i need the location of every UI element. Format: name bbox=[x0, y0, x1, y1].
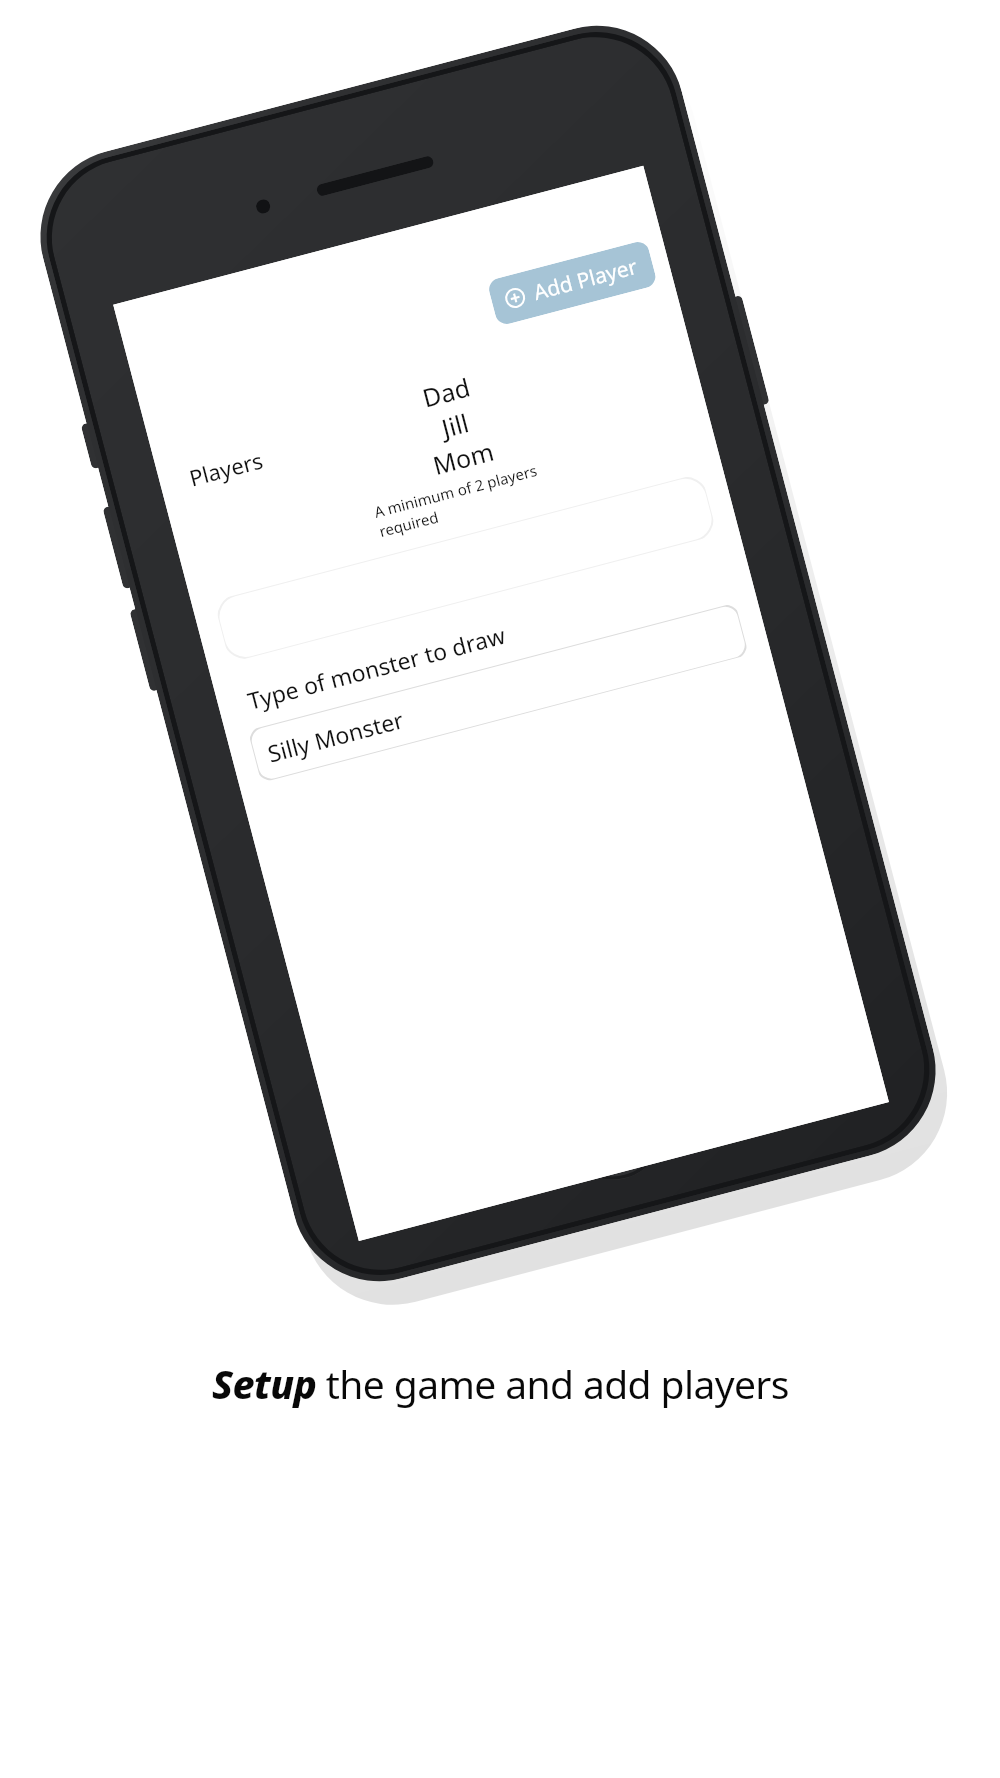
button[interactable]: Add bbox=[486, 239, 658, 327]
staticText: Setup the game and add players bbox=[212, 1357, 789, 1410]
other: Add bbox=[502, 285, 528, 311]
staticText: Add Player bbox=[530, 252, 640, 307]
staticText: Jill bbox=[438, 405, 473, 445]
button[interactable]: Silly Monster bbox=[248, 603, 749, 783]
staticText: Players bbox=[186, 444, 266, 492]
button[interactable] bbox=[214, 473, 717, 663]
staticText: Mom bbox=[429, 433, 498, 482]
staticText: Type of monster to draw bbox=[244, 619, 508, 716]
staticText: Silly Monster bbox=[264, 703, 407, 769]
staticText: A minimum of 2 players required bbox=[372, 452, 575, 541]
staticText: Dad bbox=[419, 369, 474, 415]
